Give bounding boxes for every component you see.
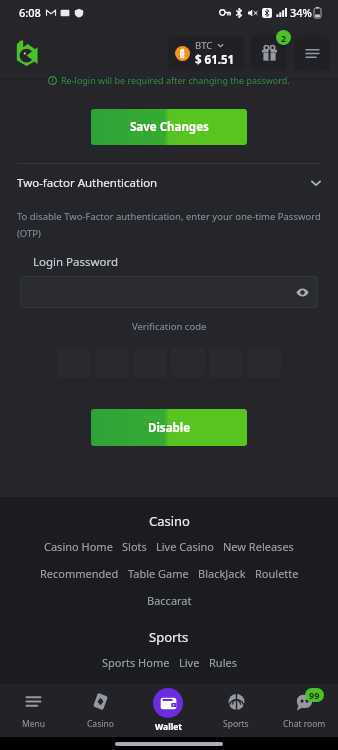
button[interactable]: Sports [202, 684, 270, 737]
button[interactable]: Show password [20, 276, 318, 308]
staticText: Live [179, 655, 200, 670]
staticText: 2 [281, 32, 287, 44]
staticText: Casino [87, 718, 114, 730]
button[interactable]: Casino [67, 684, 134, 737]
staticText: $ 61.51 [195, 52, 235, 68]
staticText: Live Casino [156, 539, 214, 554]
button[interactable]: Save Changes [91, 109, 247, 145]
staticText: Sports [149, 628, 189, 646]
staticText: Rules [209, 655, 237, 670]
button[interactable]: Wallet [134, 684, 202, 737]
button[interactable]: Live [179, 655, 200, 670]
button[interactable]: Gifts [251, 35, 287, 71]
button[interactable]: BlackJack [198, 566, 246, 581]
button[interactable]: 99 [270, 684, 338, 737]
staticText: Re-login will be required after changing… [61, 74, 290, 86]
staticText: Table Game [128, 566, 189, 581]
button[interactable]: Live Casino [156, 539, 214, 554]
button[interactable]: Casino Home [44, 539, 113, 554]
staticText: 34% [290, 5, 312, 20]
button[interactable]: Disable [91, 409, 247, 446]
staticText: Recommended [40, 566, 119, 581]
button[interactable]: Table Game [128, 566, 189, 581]
staticText: Verification code [132, 320, 207, 333]
button[interactable]: Two-factor Authentication [0, 171, 338, 195]
staticText: Slots [122, 539, 147, 554]
staticText: Wallet [155, 721, 182, 733]
staticText: To disable Two-Factor authentication, en… [17, 210, 321, 240]
staticText: Sports [223, 718, 249, 730]
button[interactable]: Roulette [255, 566, 299, 581]
button[interactable]: Menu [0, 684, 67, 737]
staticText: Casino Home [44, 539, 113, 554]
staticText: Sports Home [102, 655, 170, 670]
staticText: Roulette [255, 566, 299, 581]
button[interactable]: BTC [168, 36, 244, 71]
staticText: Save Changes [130, 119, 209, 135]
staticText: Two-factor Authentication [17, 175, 158, 191]
button[interactable]: Sports Home [102, 655, 170, 670]
staticText: Casino [149, 512, 190, 530]
staticText: New Releases [223, 539, 294, 554]
button[interactable]: Home [12, 39, 40, 67]
button[interactable]: Show password [296, 286, 309, 299]
button[interactable]: Baccarat [147, 593, 192, 608]
staticText: Menu [22, 718, 46, 730]
staticText: Login Password [33, 254, 119, 270]
staticText: Disable [148, 420, 191, 436]
button[interactable]: Rules [209, 655, 237, 670]
staticText: BTC [195, 39, 213, 52]
staticText: 99 [309, 689, 320, 701]
staticText: BlackJack [198, 566, 246, 581]
staticText: Chat room [283, 718, 326, 730]
button[interactable]: Slots [122, 539, 147, 554]
staticText: 6:08 [19, 5, 41, 20]
button[interactable]: Recommended [40, 566, 119, 581]
staticText: Baccarat [147, 593, 192, 608]
button[interactable]: Menu [294, 35, 330, 71]
button[interactable]: New Releases [223, 539, 294, 554]
